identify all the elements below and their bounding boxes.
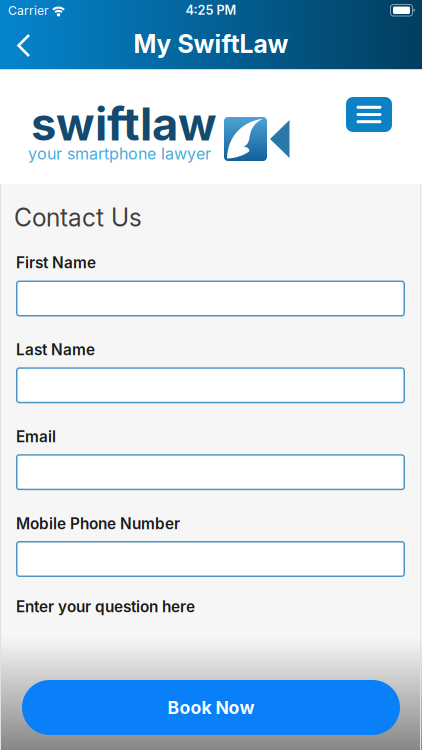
staticText: My SwiftLaw (133, 29, 288, 59)
staticText: your smartphone lawyer (28, 144, 211, 163)
staticText: Book Now (167, 697, 254, 718)
button[interactable]: Mobile Phone Number (16, 541, 405, 577)
button[interactable]: Book Now (22, 680, 400, 735)
button[interactable]: Last Name (16, 367, 405, 403)
staticText: swiftlaw (31, 96, 217, 151)
staticText: Email (16, 427, 56, 446)
staticText: 4:25 PM (185, 2, 236, 18)
staticText: Enter your question here (16, 597, 195, 616)
staticText: Contact Us (14, 202, 142, 232)
staticText: First Name (16, 253, 96, 272)
staticText: Carrier (8, 3, 49, 18)
button[interactable]: Menu (346, 97, 392, 132)
staticText: Last Name (16, 340, 95, 359)
staticText: Mobile Phone Number (16, 514, 180, 533)
button[interactable]: First Name (16, 280, 405, 316)
button[interactable]: Back (16, 33, 32, 58)
button[interactable]: Email (16, 454, 405, 490)
